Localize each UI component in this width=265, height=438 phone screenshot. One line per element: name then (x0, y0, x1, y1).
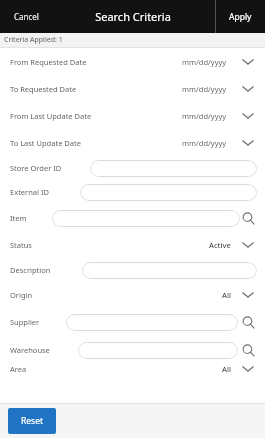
button[interactable]: Reset (8, 408, 56, 434)
button[interactable] (52, 210, 240, 227)
staticText: Item (10, 213, 52, 223)
button[interactable]: Origin (0, 282, 265, 308)
staticText: External ID (10, 187, 80, 197)
staticText: Description (10, 265, 82, 275)
staticText: Cancel (14, 11, 39, 22)
button[interactable]: To Last Update Date (0, 129, 265, 156)
staticText: mm/dd/yyyy (182, 84, 227, 94)
button[interactable]: Store Order ID (0, 156, 265, 180)
button[interactable]: Apply (216, 0, 265, 33)
staticText: To Last Update Date (10, 138, 182, 148)
staticText: Apply (229, 11, 252, 23)
staticText: Warehouse (10, 345, 78, 355)
staticText: To Requested Date (10, 84, 182, 94)
staticText: Search Criteria (95, 9, 171, 24)
button[interactable] (66, 314, 238, 331)
staticText: All (222, 364, 231, 374)
staticText: Origin (10, 290, 222, 300)
button[interactable]: Item (0, 204, 265, 232)
button[interactable] (78, 342, 238, 359)
button[interactable]: Search Warehouse (239, 341, 257, 359)
button[interactable]: External ID (0, 180, 265, 204)
button[interactable]: Area (0, 364, 265, 384)
staticText: mm/dd/yyyy (182, 138, 227, 148)
button[interactable]: Warehouse (0, 336, 265, 364)
staticText: From Requested Date (10, 57, 182, 67)
staticText: mm/dd/yyyy (182, 111, 227, 121)
staticText: Store Order ID (10, 163, 90, 173)
button[interactable]: Search Supplier (239, 313, 257, 331)
button[interactable] (80, 184, 257, 201)
staticText: Reset (21, 415, 44, 427)
staticText: All (222, 290, 231, 300)
staticText: Supplier (10, 317, 66, 327)
staticText: From Last Update Date (10, 111, 182, 121)
staticText: Criteria Applied: 1 (4, 35, 63, 45)
button[interactable] (90, 160, 257, 177)
staticText: Area (10, 364, 222, 374)
button[interactable]: From Requested Date (0, 48, 265, 75)
button[interactable]: From Last Update Date (0, 102, 265, 129)
button[interactable]: Cancel (0, 0, 52, 33)
button[interactable]: Search Item (240, 209, 257, 227)
staticText: Active (209, 240, 231, 250)
button[interactable] (82, 262, 257, 279)
button[interactable]: Status (0, 232, 265, 258)
button[interactable]: To Requested Date (0, 75, 265, 102)
staticText: mm/dd/yyyy (182, 57, 227, 67)
button[interactable]: Supplier (0, 308, 265, 336)
staticText: Status (10, 240, 209, 250)
button[interactable]: Description (0, 258, 265, 282)
